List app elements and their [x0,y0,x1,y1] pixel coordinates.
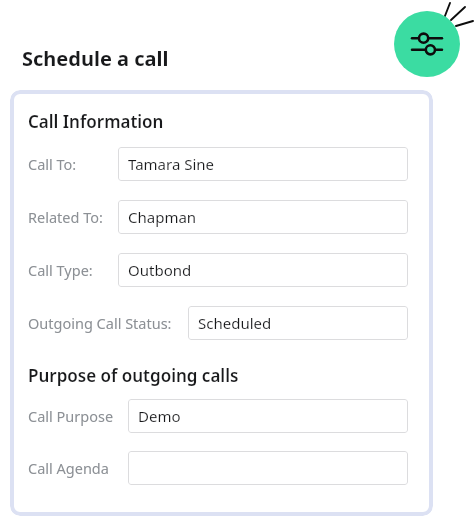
staticText: Call Information [28,110,164,133]
staticText: Scheduled [198,313,272,333]
staticText: Outbond [128,260,192,280]
staticText: Call Type: [28,260,93,280]
staticText: Outgoing Call Status: [28,313,172,333]
staticText: Call To: [28,154,77,174]
button[interactable]: Demo [128,399,408,433]
staticText: Call Purpose [28,406,114,426]
staticText: Demo [138,406,181,426]
staticText: Schedule a call [22,45,169,72]
button[interactable]: Scheduled [188,306,408,340]
staticText: Purpose of outgoing calls [28,364,239,387]
staticText: Chapman [128,207,197,227]
button[interactable]: Chapman [118,200,408,234]
staticText: Tamara Sine [128,154,215,174]
button[interactable] [128,451,408,485]
button[interactable]: Filter settings [394,11,460,77]
staticText: Related To: [28,207,103,227]
staticText: Call Agenda [28,458,109,478]
button[interactable]: Tamara Sine [118,147,408,181]
button[interactable]: Outbond [118,253,408,287]
